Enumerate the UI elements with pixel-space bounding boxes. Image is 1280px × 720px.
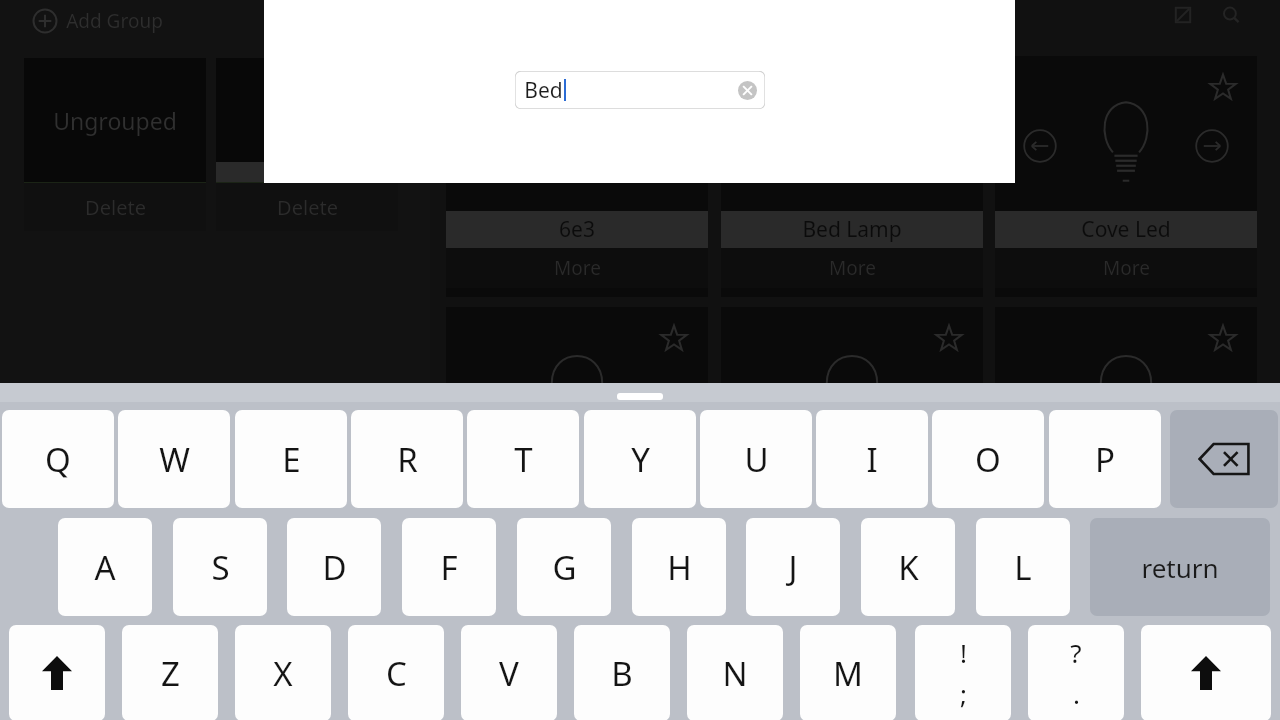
staticText: More (829, 255, 876, 281)
staticText: J (788, 545, 798, 590)
button[interactable]: Hide keyboard (617, 393, 663, 400)
button[interactable]: Clear text (738, 81, 757, 100)
staticText: Add Group (66, 8, 163, 34)
button[interactable]: ? (1028, 625, 1124, 720)
button[interactable]: H (632, 518, 726, 616)
button[interactable]: S (173, 518, 267, 616)
staticText: F (440, 545, 458, 590)
button[interactable]: Previous (1023, 129, 1057, 163)
staticText: Y (631, 437, 650, 482)
staticText: U (744, 437, 769, 482)
staticText: Bed (524, 76, 563, 105)
staticText: N (722, 651, 748, 696)
staticText: X (273, 651, 293, 696)
button[interactable]: Favorite (1209, 74, 1237, 102)
button[interactable]: T (467, 410, 579, 508)
button[interactable]: Favorite (660, 325, 688, 353)
staticText: . (1073, 676, 1080, 711)
button[interactable]: Search (1216, 0, 1246, 30)
staticText: B (611, 651, 633, 696)
button[interactable]: Favorite (721, 307, 983, 548)
button[interactable]: U (700, 410, 812, 508)
button[interactable]: More (446, 248, 708, 288)
staticText: I (866, 437, 878, 482)
staticText: R (397, 437, 418, 482)
staticText: Delete (85, 194, 146, 221)
button[interactable]: B (574, 625, 670, 720)
button[interactable]: V (461, 625, 557, 720)
staticText: return (1141, 550, 1219, 585)
staticText: L (1014, 545, 1032, 590)
staticText: Delete (277, 194, 338, 221)
staticText: E (282, 437, 301, 482)
button[interactable]: X (235, 625, 331, 720)
button[interactable]: return (1090, 518, 1270, 616)
button[interactable]: Bed (515, 71, 765, 109)
staticText: V (499, 651, 519, 696)
button[interactable]: Shift (9, 625, 105, 720)
button[interactable]: W (118, 410, 230, 508)
button[interactable]: Ungrouped (24, 58, 206, 232)
staticText: W (159, 437, 190, 482)
button[interactable]: ! (915, 625, 1011, 720)
staticText: Ungrouped (53, 105, 177, 136)
button[interactable]: Delete (216, 58, 398, 232)
staticText: ? (1070, 635, 1082, 670)
staticText: K (898, 545, 919, 590)
staticText: T (514, 437, 533, 482)
button[interactable]: Next (1195, 129, 1229, 163)
button[interactable]: O (932, 410, 1044, 508)
staticText: Cove Led (1081, 215, 1171, 244)
button[interactable]: Favorite (446, 307, 708, 548)
staticText: C (386, 651, 407, 696)
button[interactable]: P (1049, 410, 1161, 508)
button[interactable]: More (995, 248, 1257, 288)
staticText: M (833, 651, 863, 696)
button[interactable]: More (721, 248, 983, 288)
button[interactable]: Favorite (446, 56, 708, 297)
staticText: Q (45, 437, 71, 482)
staticText: ! (960, 635, 967, 670)
button[interactable]: Favorite (935, 325, 963, 353)
button[interactable]: K (861, 518, 955, 616)
button[interactable]: M (800, 625, 896, 720)
staticText: G (552, 545, 577, 590)
button[interactable]: Favorite (995, 56, 1257, 297)
button[interactable]: G (517, 518, 611, 616)
button[interactable]: Favorite (995, 307, 1257, 548)
button[interactable]: E (235, 410, 347, 508)
button[interactable]: Favorite (721, 56, 983, 297)
staticText: A (94, 545, 116, 590)
staticText: H (667, 545, 692, 590)
button[interactable]: R (351, 410, 463, 508)
button[interactable]: A (58, 518, 152, 616)
button[interactable]: I (816, 410, 928, 508)
button[interactable]: Delete (216, 183, 398, 231)
button[interactable]: D (287, 518, 381, 616)
button[interactable]: Z (122, 625, 218, 720)
button[interactable]: Y (584, 410, 696, 508)
button[interactable]: Backspace (1170, 410, 1278, 508)
button[interactable]: Edit (1168, 0, 1198, 30)
button[interactable]: Add Group (30, 6, 165, 36)
button[interactable]: Q (2, 410, 114, 508)
staticText: 6e3 (559, 215, 595, 244)
staticText: More (554, 255, 601, 281)
button[interactable]: J (746, 518, 840, 616)
button[interactable]: C (348, 625, 444, 720)
button[interactable]: Favorite (1209, 325, 1237, 353)
button[interactable]: Delete (24, 183, 206, 231)
staticText: O (975, 437, 1001, 482)
staticText: ; (960, 676, 967, 711)
button[interactable]: F (402, 518, 496, 616)
button[interactable]: Shift (1141, 625, 1271, 720)
staticText: Z (161, 651, 180, 696)
button[interactable]: N (687, 625, 783, 720)
button[interactable]: L (976, 518, 1070, 616)
